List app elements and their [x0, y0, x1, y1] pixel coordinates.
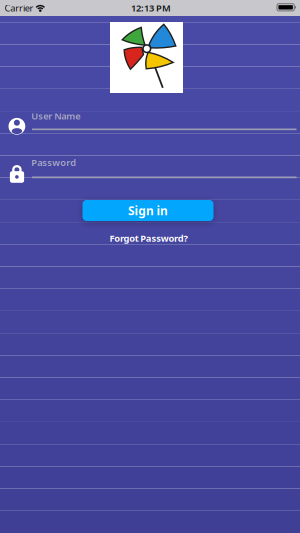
staticText: Forgot Password?: [110, 232, 187, 244]
staticText: Sign in: [128, 202, 168, 218]
staticText: Password: [31, 156, 76, 169]
button[interactable]: Forgot Password?: [110, 232, 187, 244]
staticText: User Name: [31, 110, 80, 122]
staticText: Carrier: [4, 2, 34, 14]
button[interactable]: Sign in: [82, 200, 213, 221]
staticText: 12:13 PM: [131, 2, 171, 14]
